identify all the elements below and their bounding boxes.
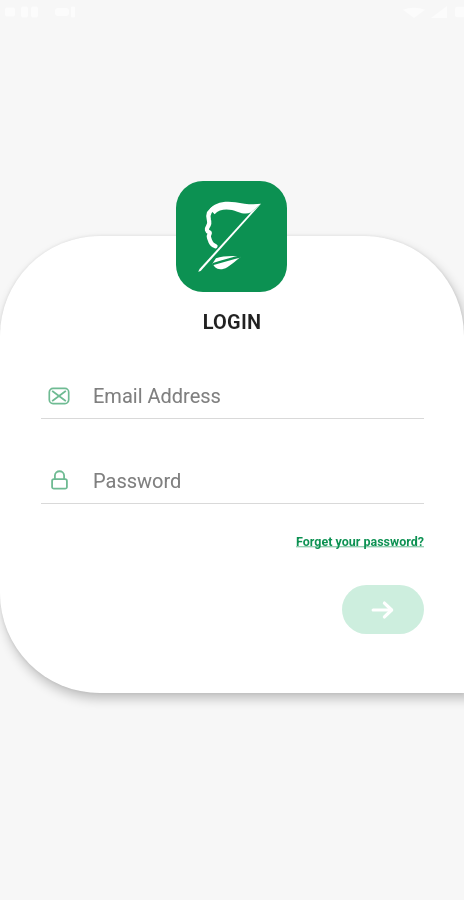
button[interactable]: Sign in [342,585,424,634]
staticText: Email Address [93,384,221,407]
staticText: Password [93,469,182,492]
button[interactable]: Forget your password? [296,534,424,549]
staticText: Forget your password? [296,534,424,549]
staticText: LOGIN [0,310,464,333]
